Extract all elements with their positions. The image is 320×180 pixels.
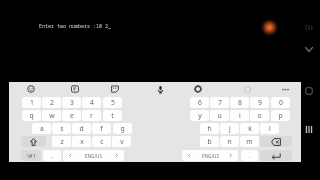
button[interactable]: z [52, 136, 71, 147]
button[interactable]: 7 [210, 97, 229, 108]
staticText: n [227, 137, 232, 146]
button[interactable]: y [190, 110, 209, 121]
staticText: p [278, 111, 283, 120]
staticText: f [100, 124, 103, 133]
staticText: k [248, 124, 252, 133]
staticText: 4 [90, 98, 94, 107]
staticText: h [207, 124, 212, 133]
staticText: d [79, 124, 84, 133]
button[interactable]: t [103, 110, 122, 121]
button[interactable]: 5 [103, 97, 122, 108]
button[interactable]: Privacy [241, 83, 253, 95]
button[interactable]: 4 [82, 97, 101, 108]
button[interactable]: More options [279, 83, 291, 95]
button[interactable]: d [72, 123, 91, 134]
staticText: z [60, 137, 64, 146]
staticText: x [80, 137, 84, 146]
button[interactable]: 1 [22, 97, 41, 108]
button[interactable]: Record [260, 18, 279, 37]
staticText: 0 [279, 98, 283, 107]
staticText: o [257, 111, 262, 120]
staticText: , [51, 152, 53, 160]
staticText: 5 [111, 98, 115, 107]
staticText: ENG/US [202, 153, 219, 159]
button[interactable]: 9 [250, 97, 269, 108]
button[interactable]: Home [302, 84, 316, 98]
button[interactable]: 0 [271, 97, 290, 108]
staticText: 1 [30, 98, 34, 107]
button[interactable]: m [240, 136, 259, 147]
button[interactable]: a [32, 123, 51, 134]
button[interactable]: Back [302, 42, 316, 56]
button[interactable]: k [240, 123, 259, 134]
button[interactable]: Shift [21, 136, 46, 147]
staticText: v [120, 137, 124, 146]
button[interactable]: q [22, 110, 41, 121]
staticText: ENG/US [85, 153, 102, 159]
button[interactable]: r [82, 110, 101, 121]
staticText: e [70, 111, 74, 120]
staticText: 3 [70, 98, 74, 107]
staticText: 6 [198, 98, 202, 107]
button[interactable]: Voice input [154, 83, 166, 95]
button[interactable]: 2 [42, 97, 61, 108]
button[interactable]: Emoji [25, 83, 37, 95]
button[interactable]: u [210, 110, 229, 121]
staticText: 8 [238, 98, 242, 107]
staticText: i [239, 111, 241, 120]
staticText: r [90, 111, 93, 120]
button[interactable]: h [200, 123, 219, 134]
staticText: s [60, 124, 64, 133]
staticText: . [249, 152, 251, 160]
button[interactable]: l [260, 123, 279, 134]
staticText: 7 [218, 98, 222, 107]
button[interactable]: c [92, 136, 111, 147]
staticText: a [40, 124, 44, 133]
button[interactable]: w [42, 110, 61, 121]
staticText: t [111, 111, 114, 120]
staticText: !#1 [27, 152, 36, 160]
staticText: 9 [258, 98, 262, 107]
staticText: q [29, 111, 34, 120]
staticText: u [217, 111, 222, 120]
button[interactable]: n [220, 136, 239, 147]
button[interactable]: v [112, 136, 131, 147]
staticText: b [207, 137, 212, 146]
staticText: y [198, 111, 202, 120]
button[interactable]: Enter [260, 150, 292, 161]
button[interactable]: s [52, 123, 71, 134]
button[interactable]: Recent apps [302, 20, 316, 34]
button[interactable]: ENG/US [182, 150, 238, 161]
staticText: m [246, 137, 253, 146]
button[interactable]: 8 [230, 97, 249, 108]
button[interactable]: . [241, 150, 258, 161]
button[interactable]: x [72, 136, 91, 147]
button[interactable]: o [250, 110, 269, 121]
staticText: Enter two numbers :10 2_ [39, 23, 112, 30]
button[interactable]: Settings [192, 83, 204, 95]
staticText: 2 [50, 98, 54, 107]
button[interactable]: !#1 [21, 150, 41, 161]
staticText: w [49, 111, 55, 120]
button[interactable]: 6 [190, 97, 209, 108]
staticText: c [100, 137, 104, 146]
button[interactable]: p [271, 110, 290, 121]
button[interactable]: 3 [62, 97, 81, 108]
staticText: l [269, 124, 271, 133]
button[interactable]: i [230, 110, 249, 121]
staticText: g [120, 124, 125, 133]
button[interactable]: Backspace [260, 136, 292, 147]
staticText: j [229, 124, 231, 133]
button[interactable]: f [92, 123, 111, 134]
button[interactable]: e [62, 110, 81, 121]
button[interactable]: , [43, 150, 61, 161]
button[interactable]: ENG/US [63, 150, 124, 161]
button[interactable]: Clipboard [69, 83, 81, 95]
button[interactable]: b [200, 136, 219, 147]
button[interactable]: g [113, 123, 132, 134]
button[interactable]: Stickers [109, 83, 121, 95]
button[interactable]: Menu [302, 122, 316, 136]
button[interactable]: j [220, 123, 239, 134]
